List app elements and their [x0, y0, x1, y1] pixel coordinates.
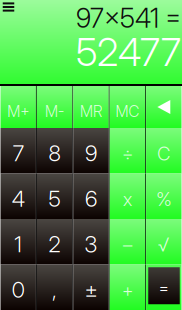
staticText: 52477	[76, 29, 181, 75]
staticText: +	[122, 279, 133, 302]
staticText: 9	[85, 140, 97, 166]
staticText: M+	[7, 102, 29, 121]
staticText: 5	[49, 185, 61, 212]
staticText: MR	[80, 102, 102, 121]
staticText: =	[158, 277, 169, 298]
button[interactable]: ÷	[110, 128, 145, 173]
button[interactable]: M+	[0, 86, 36, 128]
button[interactable]: 3	[73, 219, 109, 264]
button[interactable]: MC	[110, 86, 145, 128]
button[interactable]: Menu	[0, 0, 17, 14]
button[interactable]: +	[110, 264, 145, 310]
staticText: 4	[12, 185, 25, 212]
button[interactable]: √	[146, 219, 181, 264]
staticText: 97x541 =	[76, 2, 181, 34]
button[interactable]: ,	[37, 264, 72, 310]
button[interactable]: 7	[0, 128, 36, 173]
button[interactable]: ±	[73, 264, 109, 310]
staticText: 1	[14, 231, 22, 257]
button[interactable]: =	[146, 264, 181, 310]
staticText: –	[123, 233, 132, 256]
button[interactable]: %	[146, 173, 181, 219]
button[interactable]: MR	[73, 86, 109, 128]
button[interactable]: 8	[37, 128, 72, 173]
staticText: 3	[84, 231, 97, 257]
button[interactable]: Backspace	[146, 86, 181, 128]
button[interactable]: C	[146, 128, 181, 173]
staticText: √	[158, 233, 169, 256]
staticText: ±	[84, 276, 97, 303]
staticText: ÷	[122, 142, 133, 165]
staticText: 6	[85, 185, 97, 212]
staticText: x	[123, 188, 132, 211]
button[interactable]: 9	[73, 128, 109, 173]
button[interactable]: x	[110, 173, 145, 219]
staticText: MC	[115, 102, 139, 121]
button[interactable]: 4	[0, 173, 36, 219]
staticText: 8	[49, 140, 61, 166]
staticText: 0	[12, 276, 25, 303]
button[interactable]: 5	[37, 173, 72, 219]
staticText: 7	[13, 140, 24, 166]
staticText: ,	[52, 276, 57, 303]
button[interactable]: 2	[37, 219, 72, 264]
button[interactable]: 6	[73, 173, 109, 219]
staticText: 2	[49, 231, 61, 257]
button[interactable]: 1	[0, 219, 36, 264]
staticText: %	[156, 188, 171, 211]
button[interactable]: –	[110, 219, 145, 264]
staticText: C	[157, 142, 170, 165]
button[interactable]: 0	[0, 264, 36, 310]
button[interactable]: M-	[37, 86, 72, 128]
staticText: M-	[45, 102, 64, 121]
